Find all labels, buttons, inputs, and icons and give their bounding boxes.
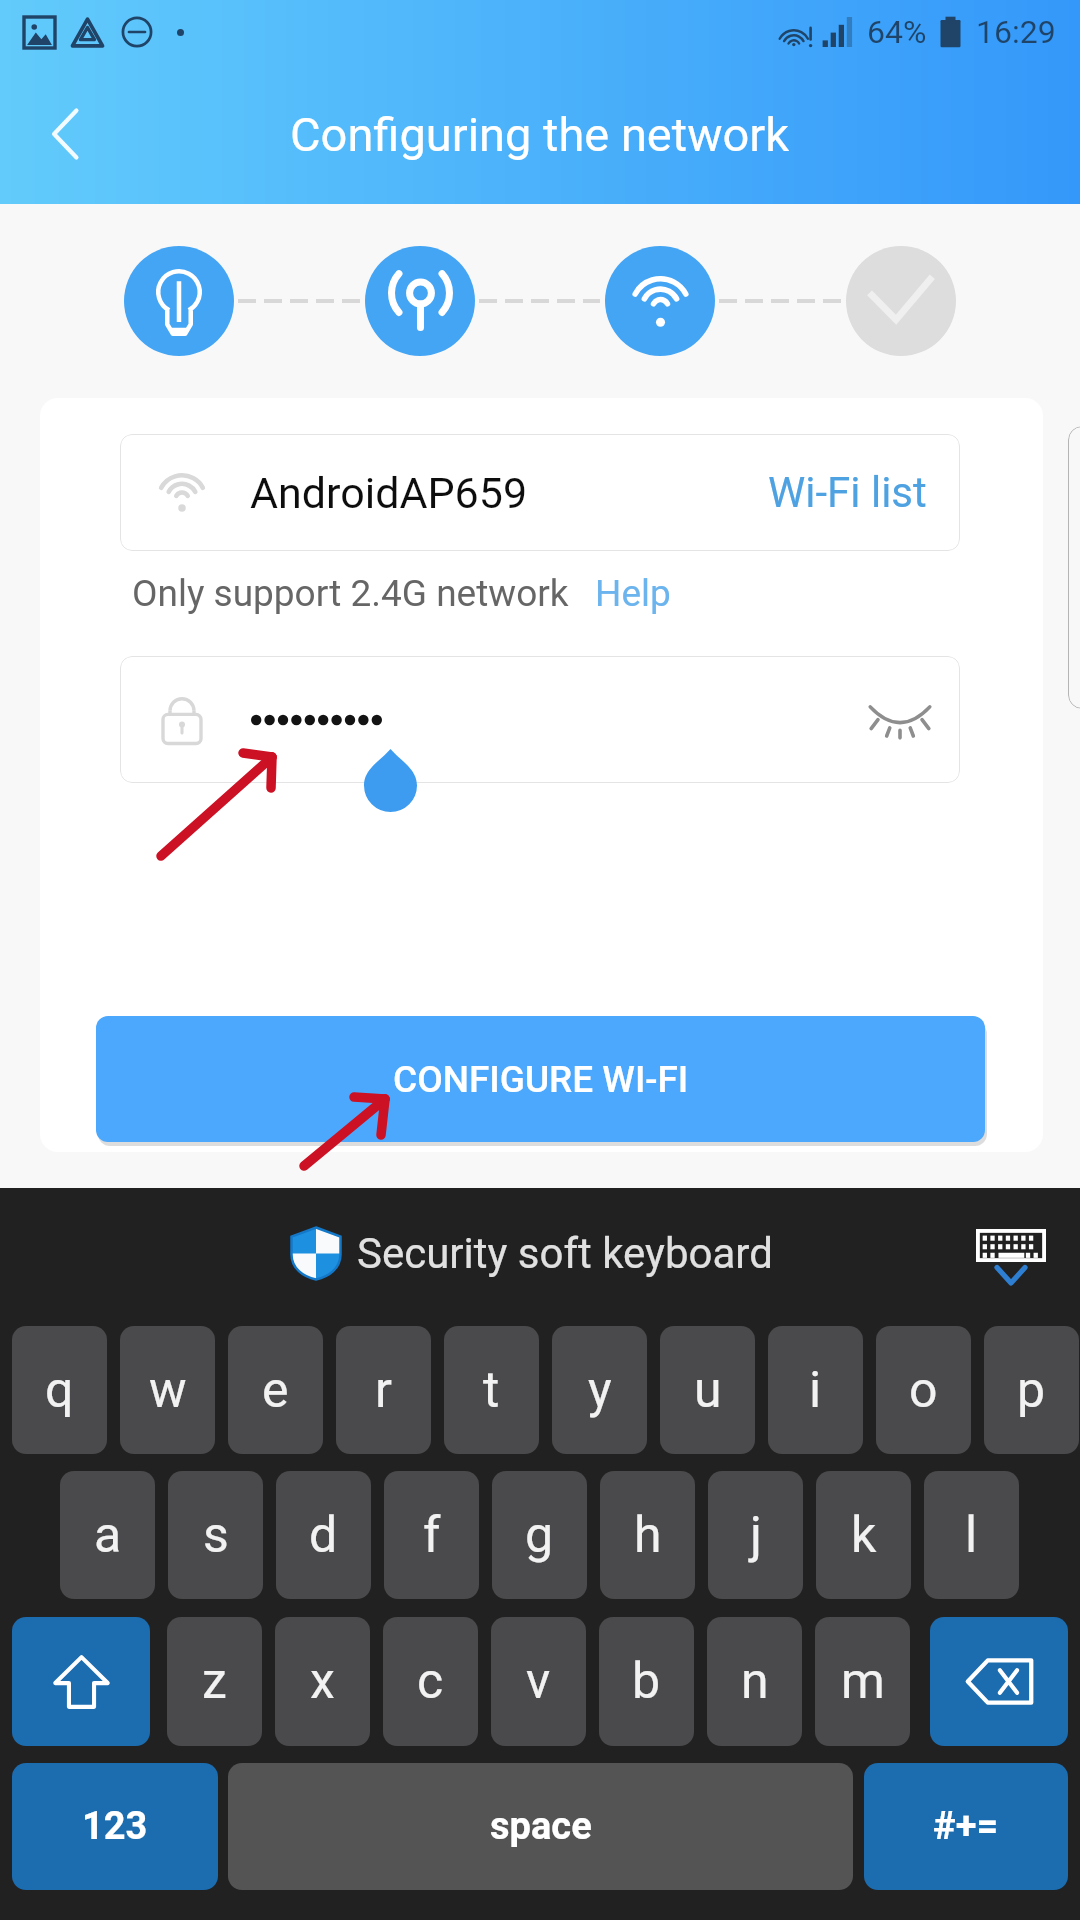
staticText: 123 xyxy=(82,1804,148,1849)
button[interactable]: c xyxy=(383,1617,478,1746)
button[interactable]: v xyxy=(491,1617,586,1746)
staticText: v xyxy=(526,1652,551,1711)
button[interactable]: h xyxy=(600,1471,695,1599)
staticText: s xyxy=(203,1506,229,1565)
staticText: Security soft keyboard xyxy=(357,1229,773,1278)
staticText: t xyxy=(483,1361,500,1420)
button[interactable]: k xyxy=(816,1471,911,1599)
staticText: 16:29 xyxy=(976,13,1056,51)
button[interactable]: CONFIGURE WI-FI xyxy=(96,1016,985,1142)
button[interactable]: b xyxy=(599,1617,694,1746)
staticText: h xyxy=(634,1506,662,1565)
button[interactable]: x xyxy=(275,1617,370,1746)
button[interactable]: o xyxy=(876,1326,971,1454)
button[interactable]: 123 xyxy=(12,1763,218,1890)
button[interactable]: j xyxy=(708,1471,803,1599)
staticText: AndroidAP659 xyxy=(250,468,528,518)
staticText: j xyxy=(750,1506,762,1565)
staticText: Wi-Fi list xyxy=(768,468,927,517)
button[interactable]: g xyxy=(492,1471,587,1599)
staticText: o xyxy=(909,1361,938,1420)
button[interactable]: Backspace xyxy=(930,1617,1068,1746)
button[interactable]: Pairing xyxy=(365,246,475,356)
button[interactable]: i xyxy=(768,1326,863,1454)
button[interactable]: Show password xyxy=(850,670,950,770)
staticText: b xyxy=(632,1652,661,1711)
button[interactable]: y xyxy=(552,1326,647,1454)
staticText: c xyxy=(417,1652,444,1711)
staticText: l xyxy=(965,1506,978,1565)
staticText: y xyxy=(588,1361,612,1420)
button[interactable]: Hide keyboard xyxy=(956,1201,1066,1311)
staticText: f xyxy=(423,1506,441,1565)
staticText: Only support 2.4G network xyxy=(132,572,569,615)
button[interactable]: #+= xyxy=(864,1763,1068,1890)
staticText: i xyxy=(809,1361,822,1420)
staticText: a xyxy=(94,1506,122,1565)
staticText: q xyxy=(45,1361,74,1420)
staticText: 64% xyxy=(867,13,927,51)
button[interactable]: n xyxy=(707,1617,802,1746)
button[interactable]: p xyxy=(984,1326,1079,1454)
button[interactable]: Back xyxy=(10,79,120,189)
button[interactable]: AndroidAP659 xyxy=(120,434,960,551)
button[interactable]: space xyxy=(228,1763,853,1890)
staticText: p xyxy=(1017,1361,1046,1420)
button[interactable]: a xyxy=(60,1471,155,1599)
button[interactable]: Device xyxy=(124,246,234,356)
staticText: #+= xyxy=(933,1804,999,1849)
staticText: k xyxy=(851,1506,877,1565)
button[interactable]: m xyxy=(815,1617,910,1746)
staticText: Configuring the network xyxy=(290,107,790,162)
button[interactable]: d xyxy=(276,1471,371,1599)
staticText: w xyxy=(149,1361,187,1420)
button[interactable]: Help xyxy=(589,563,677,623)
button[interactable]: t xyxy=(444,1326,539,1454)
staticText: e xyxy=(262,1361,289,1420)
staticText: space xyxy=(490,1804,592,1849)
button[interactable]: q xyxy=(12,1326,107,1454)
button[interactable]: Show password xyxy=(120,656,960,783)
button[interactable]: r xyxy=(336,1326,431,1454)
button[interactable]: w xyxy=(120,1326,215,1454)
staticText: u xyxy=(694,1361,722,1420)
button[interactable]: e xyxy=(228,1326,323,1454)
staticText: g xyxy=(525,1506,554,1565)
button[interactable]: z xyxy=(167,1617,262,1746)
button[interactable]: l xyxy=(924,1471,1019,1599)
button[interactable]: Wi-Fi xyxy=(605,246,715,356)
staticText: m xyxy=(841,1652,885,1711)
staticText: x xyxy=(310,1652,335,1711)
staticText: Help xyxy=(595,572,671,615)
staticText: d xyxy=(309,1506,338,1565)
button[interactable]: u xyxy=(660,1326,755,1454)
button[interactable]: s xyxy=(168,1471,263,1599)
button[interactable]: Shift xyxy=(12,1617,150,1746)
staticText: r xyxy=(375,1361,392,1420)
button[interactable]: Done xyxy=(846,246,956,356)
button[interactable]: f xyxy=(384,1471,479,1599)
staticText: n xyxy=(741,1652,769,1711)
staticText: z xyxy=(202,1652,227,1711)
staticText: CONFIGURE WI-FI xyxy=(393,1058,689,1101)
button[interactable]: Wi-Fi list xyxy=(764,460,931,525)
